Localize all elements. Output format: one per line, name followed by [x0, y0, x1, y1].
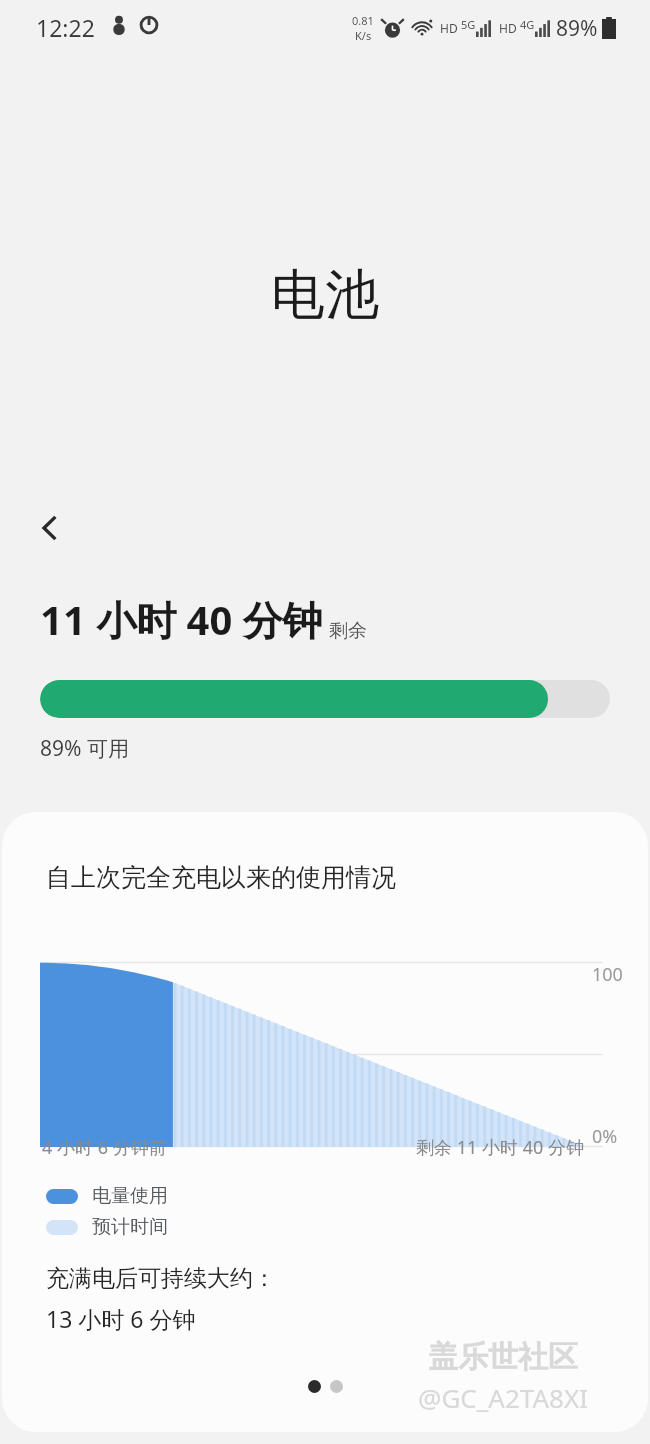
staticText: 剩余 11 小时 40 分钟	[416, 1135, 584, 1160]
staticText: 4G	[520, 17, 535, 32]
staticText: 4 小时 6 分钟前	[42, 1135, 167, 1160]
staticText: 盖乐世社区	[428, 1338, 578, 1376]
staticText: K/s	[355, 28, 372, 43]
staticText: 89% 可用	[40, 734, 129, 763]
staticText: 5G	[461, 17, 476, 32]
staticText: 89%	[556, 14, 598, 43]
staticText: 0%	[592, 1124, 618, 1149]
staticText: HD	[440, 20, 458, 36]
button[interactable]: Page 1	[308, 1380, 321, 1393]
staticText: 12:22	[36, 12, 95, 43]
staticText: 电量使用	[92, 1184, 168, 1208]
staticText: @GC_A2TA8XI	[418, 1380, 588, 1415]
staticText: 100	[592, 962, 623, 987]
staticText: 电池	[271, 261, 379, 329]
button[interactable]: Back	[16, 494, 84, 562]
staticText: 预计时间	[92, 1215, 168, 1239]
button[interactable]: Page 2	[330, 1380, 343, 1393]
staticText: 自上次完全充电以来的使用情况	[46, 862, 396, 893]
button[interactable]: 自上次完全充电以来的使用情况	[2, 812, 648, 1432]
staticText: 11 小时 40 分钟	[40, 592, 323, 647]
staticText: 剩余	[329, 619, 367, 643]
staticText: 13 小时 6 分钟	[46, 1303, 196, 1334]
staticText: 0.81	[352, 13, 374, 28]
staticText: HD	[499, 20, 517, 36]
staticText: 充满电后可持续大约：	[46, 1264, 276, 1293]
